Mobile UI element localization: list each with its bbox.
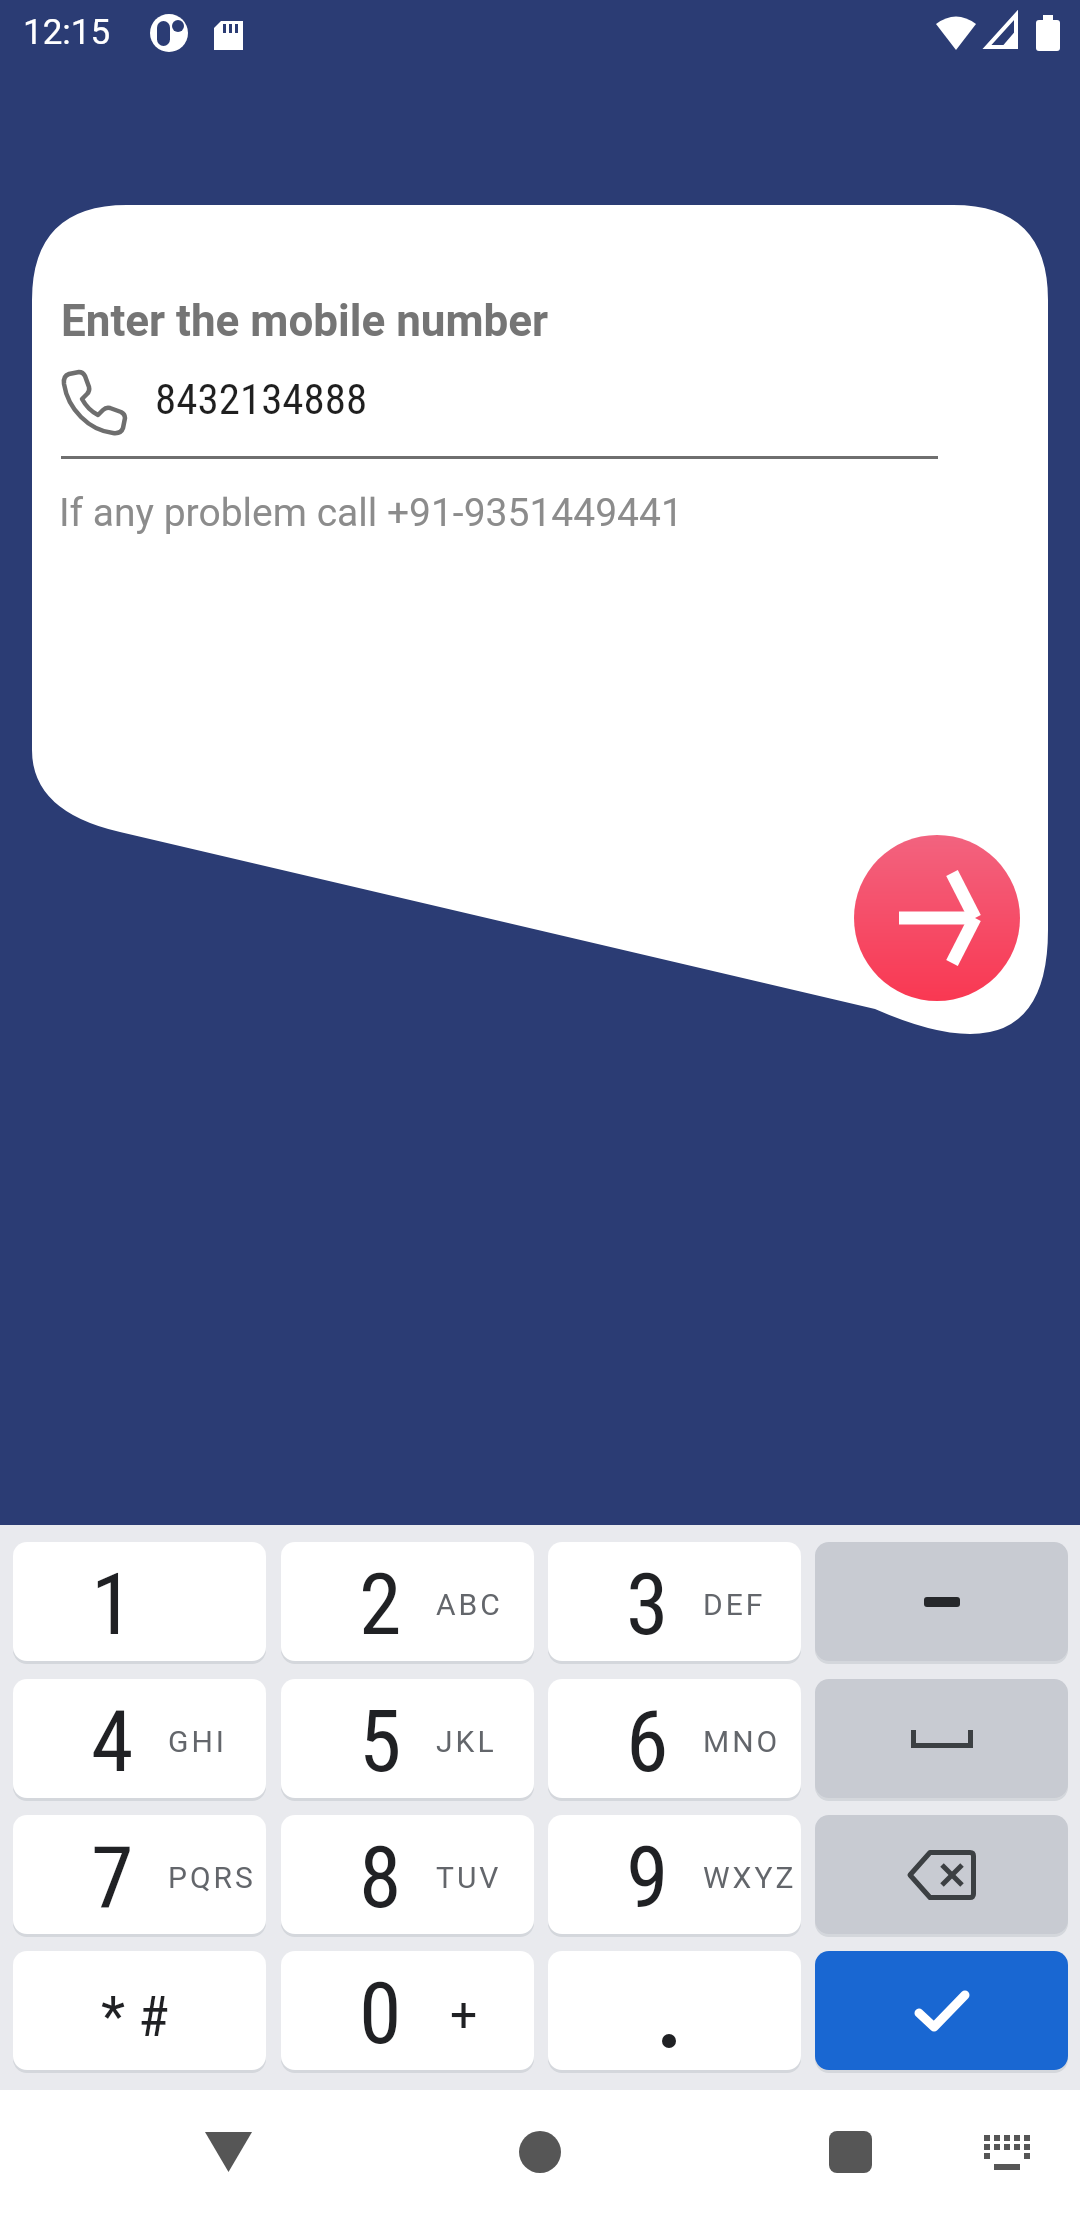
staticText: Enter the mobile number <box>61 295 549 347</box>
staticText: 4 <box>91 1691 134 1792</box>
button[interactable] <box>480 2117 600 2187</box>
staticText: 3 <box>626 1554 669 1655</box>
button[interactable]: 2 <box>281 1542 534 1661</box>
button[interactable]: 3 <box>548 1542 801 1661</box>
button[interactable]: 1 <box>13 1542 266 1661</box>
staticText: 6 <box>626 1691 669 1792</box>
staticText: 7 <box>91 1827 134 1928</box>
button[interactable] <box>815 1679 1068 1798</box>
button[interactable] <box>59 355 940 459</box>
staticText: JKL <box>436 1724 497 1759</box>
staticText: 8 <box>359 1827 402 1928</box>
staticText: If any problem call +91-9351449441 <box>59 490 683 536</box>
button[interactable]: 9 <box>548 1815 801 1934</box>
staticText: 9 <box>626 1827 669 1928</box>
staticText: 8432134888 <box>155 374 368 424</box>
button[interactable] <box>815 1542 1068 1661</box>
button[interactable] <box>168 2117 288 2187</box>
staticText: PQRS <box>168 1860 256 1895</box>
staticText: 12:15 <box>23 12 111 53</box>
button[interactable] <box>962 2117 1052 2187</box>
staticText: GHI <box>168 1724 227 1759</box>
staticText: ABC <box>436 1587 503 1622</box>
staticText: 5 <box>359 1691 402 1792</box>
button[interactable]: 6 <box>548 1679 801 1798</box>
button[interactable] <box>790 2117 910 2187</box>
button[interactable]: 5 <box>281 1679 534 1798</box>
staticText: TUV <box>436 1860 502 1895</box>
button[interactable] <box>854 835 1020 1001</box>
button[interactable] <box>815 1951 1068 2070</box>
staticText: + <box>450 1986 478 2042</box>
staticText: 0 <box>359 1963 402 2064</box>
button[interactable]: * # <box>13 1951 266 2070</box>
button[interactable] <box>548 1951 801 2070</box>
staticText: 2 <box>359 1554 402 1655</box>
button[interactable] <box>815 1815 1068 1934</box>
staticText: * # <box>101 1984 169 2050</box>
staticText: MNO <box>703 1724 781 1759</box>
button[interactable]: 4 <box>13 1679 266 1798</box>
button[interactable]: 8 <box>281 1815 534 1934</box>
button[interactable]: 7 <box>13 1815 266 1934</box>
button[interactable]: 0 <box>281 1951 534 2070</box>
staticText: DEF <box>703 1587 766 1622</box>
staticText: 1 <box>91 1554 134 1655</box>
staticText: WXYZ <box>703 1860 797 1895</box>
